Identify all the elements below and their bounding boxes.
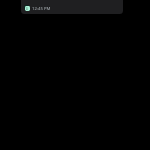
button[interactable]: Notification (21, 0, 123, 14)
staticText: 12:45 PM (32, 5, 51, 11)
